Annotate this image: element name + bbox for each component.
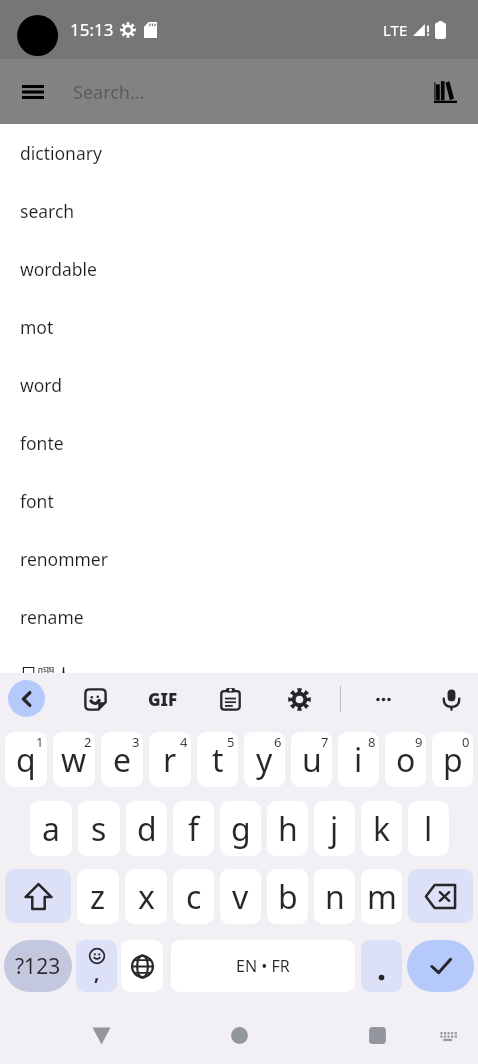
button[interactable]: 日曜人 — [0, 646, 478, 704]
staticText: font — [20, 489, 54, 513]
staticText: o — [396, 738, 416, 782]
button[interactable]: GIF — [143, 679, 183, 719]
staticText: 8 — [368, 733, 376, 751]
button[interactable]: t — [197, 732, 238, 787]
staticText: e — [113, 738, 132, 782]
button[interactable]: Settings — [279, 679, 319, 719]
staticText: y — [256, 738, 273, 782]
button[interactable]: mot — [0, 298, 478, 356]
button[interactable]: Back — [77, 1011, 125, 1059]
button[interactable]: q — [5, 732, 47, 787]
button[interactable]: s — [78, 801, 120, 856]
button[interactable]: j — [314, 801, 355, 856]
staticText: word — [20, 373, 62, 397]
button[interactable]: Navigation menu — [10, 69, 55, 114]
button[interactable]: Hide keyboard — [423, 1011, 471, 1059]
button[interactable]: Clipboard — [210, 679, 250, 719]
staticText: w — [61, 738, 87, 782]
button[interactable]: g — [220, 801, 261, 856]
staticText: LTE — [383, 20, 408, 40]
staticText: dictionary — [20, 141, 102, 165]
button[interactable]: n — [314, 869, 355, 924]
staticText: 15:13 — [70, 18, 114, 41]
staticText: , — [94, 960, 100, 986]
button[interactable]: k — [361, 801, 402, 856]
button[interactable]: search — [0, 182, 478, 240]
button[interactable]: Emoji and comma — [76, 940, 117, 992]
button[interactable]: font — [0, 472, 478, 530]
staticText: mot — [20, 315, 54, 339]
button[interactable]: EN • FR — [171, 940, 355, 992]
staticText: fonte — [20, 431, 64, 455]
staticText: GIF — [148, 688, 178, 711]
staticText: b — [278, 875, 298, 919]
button[interactable]: Voice input — [431, 679, 471, 719]
button[interactable]: renommer — [0, 530, 478, 588]
staticText: c — [186, 875, 202, 919]
staticText: q — [16, 738, 36, 782]
staticText: 3 — [132, 733, 140, 751]
button[interactable]: m — [361, 869, 402, 924]
button[interactable]: Change language — [121, 940, 163, 992]
staticText: 5 — [227, 733, 235, 751]
staticText: s — [91, 807, 107, 851]
button[interactable]: d — [126, 801, 167, 856]
staticText: j — [330, 807, 339, 851]
staticText: n — [325, 875, 345, 919]
button[interactable]: Enter — [407, 940, 474, 992]
staticText: k — [373, 807, 391, 851]
button[interactable]: e — [101, 732, 143, 787]
button[interactable]: x — [125, 869, 167, 924]
staticText: p — [443, 738, 463, 782]
staticText: wordable — [20, 257, 97, 281]
button[interactable]: b — [267, 869, 308, 924]
button[interactable]: Stickers — [75, 679, 115, 719]
button[interactable]: a — [30, 801, 72, 856]
staticText: u — [302, 738, 322, 782]
staticText: 7 — [321, 733, 329, 751]
button[interactable]: More options — [363, 679, 403, 719]
staticText: 6 — [274, 733, 282, 751]
staticText: 9 — [415, 733, 423, 751]
button[interactable]: Library — [423, 69, 468, 114]
button[interactable]: p — [432, 732, 473, 787]
staticText: 1 — [36, 733, 44, 751]
button[interactable]: i — [338, 732, 379, 787]
button[interactable]: Recent apps — [353, 1011, 401, 1059]
button[interactable]: l — [408, 801, 449, 856]
staticText: search — [20, 199, 75, 223]
button[interactable]: Backspace — [408, 869, 473, 923]
button[interactable]: u — [291, 732, 332, 787]
button[interactable]: h — [267, 801, 308, 856]
staticText: v — [232, 875, 249, 919]
button[interactable]: Home — [215, 1011, 263, 1059]
button[interactable]: Shift — [5, 869, 71, 923]
button[interactable]: Period — [361, 940, 402, 992]
staticText: 4 — [180, 733, 188, 751]
staticText: g — [231, 807, 251, 851]
staticText: EN • FR — [236, 955, 290, 977]
button[interactable]: c — [173, 869, 214, 924]
staticText: renommer — [20, 547, 108, 571]
staticText: 2 — [84, 733, 92, 751]
staticText: a — [42, 807, 60, 851]
button[interactable]: dictionary — [0, 124, 478, 182]
button[interactable]: wordable — [0, 240, 478, 298]
button[interactable]: word — [0, 356, 478, 414]
button[interactable]: ?123 — [4, 940, 72, 992]
button[interactable]: y — [244, 732, 285, 787]
staticText: ?123 — [15, 952, 61, 981]
button[interactable]: v — [220, 869, 261, 924]
button[interactable]: rename — [0, 588, 478, 646]
staticText: t — [212, 738, 224, 782]
button[interactable]: Back — [8, 680, 45, 717]
button[interactable]: fonte — [0, 414, 478, 472]
button[interactable]: z — [77, 869, 119, 924]
button[interactable]: w — [53, 732, 95, 787]
staticText: l — [424, 807, 433, 851]
staticText: r — [163, 738, 177, 782]
staticText: m — [367, 875, 397, 919]
button[interactable]: r — [149, 732, 191, 787]
button[interactable]: o — [385, 732, 426, 787]
button[interactable]: f — [173, 801, 214, 856]
